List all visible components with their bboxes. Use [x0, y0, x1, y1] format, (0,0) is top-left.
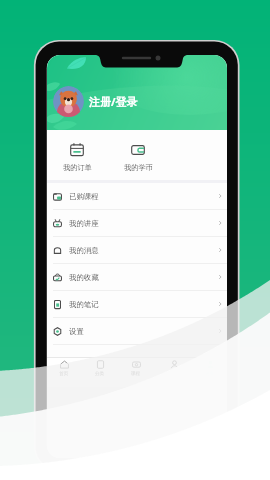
button[interactable]: 我的	[156, 357, 192, 387]
button[interactable]: 我的订单	[49, 130, 105, 180]
button[interactable]: 我的收藏	[47, 264, 227, 290]
button[interactable]: 设置	[47, 318, 227, 344]
button[interactable]: 我的笔记	[47, 291, 227, 317]
staticText: 已购课程	[69, 192, 99, 201]
staticText: 我的学币	[124, 163, 153, 172]
button[interactable]: 课程	[118, 357, 154, 387]
staticText: 注册/登录	[89, 94, 138, 109]
staticText: 我的笔记	[69, 300, 99, 309]
staticText: 我的收藏	[69, 273, 99, 282]
button[interactable]: 注册/登录	[53, 86, 138, 117]
button[interactable]: 我的学币	[110, 130, 166, 180]
staticText: 课程	[131, 371, 141, 377]
staticText: 分类	[95, 371, 105, 377]
staticText: 首页	[59, 371, 69, 377]
staticText: 我的订单	[63, 163, 92, 172]
button[interactable]: 分类	[82, 357, 118, 387]
button[interactable]: 首页	[47, 357, 82, 387]
button[interactable]: 我的讲座	[47, 210, 227, 236]
staticText: 我的讲座	[69, 219, 99, 228]
staticText: 我的消息	[69, 246, 99, 255]
button[interactable]: 已购课程	[47, 183, 227, 209]
staticText: 设置	[69, 327, 84, 336]
button[interactable]: 我的消息	[47, 237, 227, 263]
